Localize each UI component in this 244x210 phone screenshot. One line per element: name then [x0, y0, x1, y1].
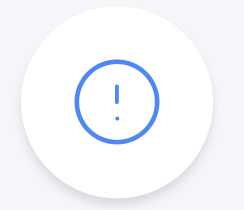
button[interactable]: Alert: [72, 57, 162, 147]
